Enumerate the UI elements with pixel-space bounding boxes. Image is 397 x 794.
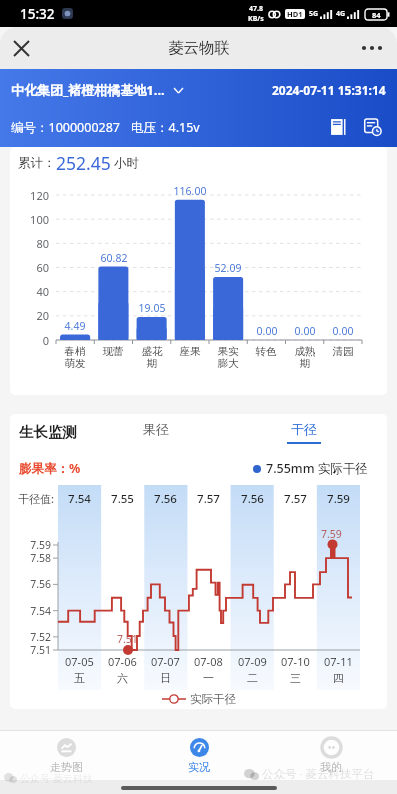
staticText: HD1 [287, 9, 303, 19]
staticText: 7.59 [10, 538, 51, 552]
staticText: 07-10 [281, 654, 310, 669]
staticText: 四 [333, 671, 344, 685]
staticText: 7.57 [274, 491, 317, 507]
button[interactable]: 干径 [286, 421, 322, 444]
staticText: 公众号 · 菱云科技平台 [262, 766, 375, 782]
staticText: 五 [74, 671, 85, 685]
staticText: 7.54 [10, 604, 51, 618]
staticText: 7.55mm 实际干径 [266, 460, 368, 477]
staticText: 52.09 [201, 261, 255, 275]
staticText: 编号：1000000287 [11, 119, 121, 136]
staticText: 电压：4.15v [131, 119, 200, 136]
staticText: 生长监测 [19, 423, 77, 441]
staticText: KB/s [248, 14, 264, 24]
button[interactable]: 中化集团_褚橙柑橘基地1... [11, 81, 183, 99]
staticText: 7.57 [187, 491, 230, 507]
staticText: 15:32 [20, 5, 55, 23]
staticText: 100 [10, 212, 49, 227]
staticText: 小时 [114, 155, 139, 171]
staticText: 果径 [143, 421, 169, 437]
staticText: 19.05 [125, 301, 179, 315]
staticText: 7.56 [144, 491, 187, 507]
staticText: 0.00 [278, 324, 332, 338]
staticText: 4G [336, 9, 346, 19]
staticText: 4.49 [48, 319, 102, 333]
button[interactable]: History [360, 114, 386, 140]
staticText: 07-08 [194, 654, 223, 669]
staticText: 07-06 [108, 654, 137, 669]
staticText: 成熟 期 [286, 345, 324, 370]
staticText: 0 [10, 333, 49, 348]
staticText: 实际干径 [190, 692, 236, 706]
button[interactable]: 果径 [138, 421, 174, 444]
staticText: 80 [10, 236, 49, 251]
staticText: 座果 [171, 345, 209, 358]
staticText: 7.52 [10, 630, 51, 644]
staticText: 7.58 [10, 551, 51, 565]
staticText: 中化集团_褚橙柑橘基地1... [11, 81, 165, 99]
staticText: 日 [160, 671, 171, 685]
staticText: 干径 [291, 421, 317, 437]
staticText: 干径值: [18, 491, 54, 506]
staticText: 07-11 [324, 654, 353, 669]
staticText: 实况 [188, 760, 210, 774]
staticText: 盛花 期 [133, 345, 171, 370]
staticText: 07-05 [65, 654, 94, 669]
button[interactable]: Report [326, 114, 352, 140]
staticText: 膨果率：% [19, 460, 81, 477]
staticText: 我的 [320, 760, 342, 774]
staticText: 40 [10, 284, 49, 299]
staticText: 07-09 [238, 654, 267, 669]
staticText: 清园 [324, 345, 362, 358]
staticText: 7.55 [101, 491, 144, 507]
button[interactable]: Close [4, 31, 38, 65]
staticText: 7.51 [10, 643, 51, 657]
staticText: 2024-07-11 15:31:14 [272, 82, 386, 98]
staticText: 六 [117, 671, 128, 685]
staticText: 84 [372, 10, 381, 20]
staticText: 走势图 [50, 760, 83, 774]
staticText: 累计： [18, 155, 56, 171]
staticText: 三 [290, 671, 301, 685]
staticText: 60.82 [87, 251, 141, 265]
button[interactable]: 实况 [133, 731, 265, 780]
staticText: 0.00 [240, 324, 294, 338]
button[interactable]: 走势图 [0, 731, 133, 780]
staticText: 7.54 [58, 491, 101, 507]
staticText: 二 [247, 671, 258, 685]
button[interactable]: 我的 [265, 731, 397, 780]
staticText: 7.56 [10, 577, 51, 591]
staticText: 7.59 [321, 527, 342, 541]
staticText: 春梢 萌发 [56, 345, 94, 370]
staticText: 252.45 [56, 151, 111, 175]
staticText: 现蕾 [94, 345, 132, 358]
staticText: 0.00 [316, 324, 370, 338]
staticText: 菱云物联 [168, 38, 230, 58]
staticText: 07-07 [151, 654, 180, 669]
staticText: 5G [309, 9, 319, 19]
staticText: 公众号·菱云科技 [20, 771, 93, 785]
staticText: 7.56 [231, 491, 274, 507]
staticText: 转色 [247, 345, 285, 358]
staticText: 120 [10, 188, 49, 203]
staticText: 116.00 [163, 184, 217, 198]
staticText: 60 [10, 260, 49, 275]
staticText: 20 [10, 308, 49, 323]
staticText: 47.8 [249, 4, 263, 14]
staticText: 7.59 [317, 491, 360, 507]
button[interactable]: More options [355, 31, 389, 65]
staticText: 果实 膨大 [209, 345, 247, 370]
staticText: 一 [203, 671, 214, 685]
staticText: 7.51 [117, 632, 138, 646]
